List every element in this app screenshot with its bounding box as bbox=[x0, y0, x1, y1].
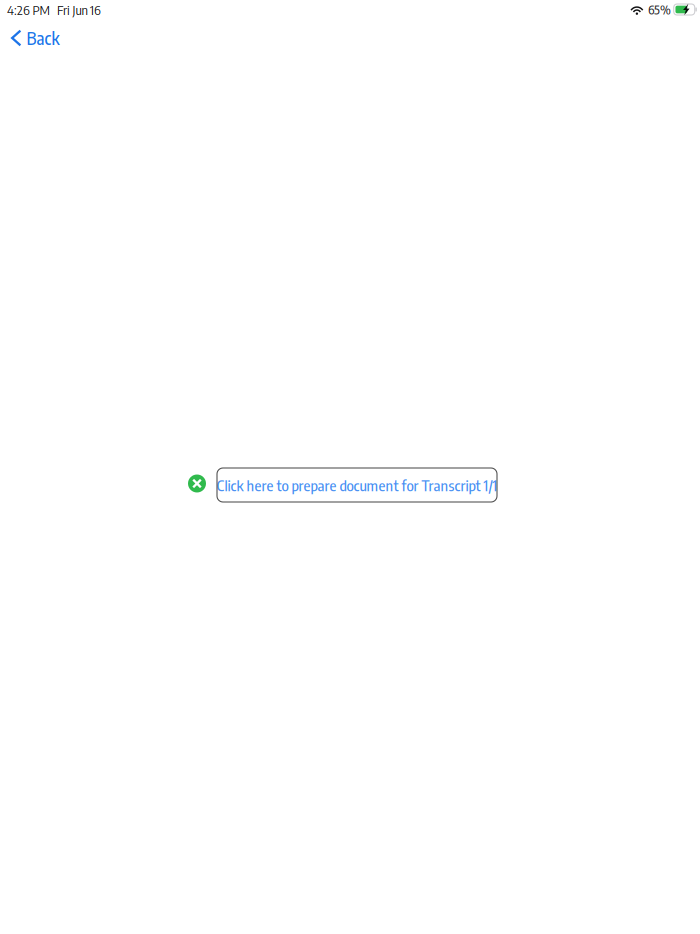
staticText: Fri bbox=[57, 1, 70, 18]
staticText: 4:26 bbox=[7, 1, 30, 18]
staticText: Back bbox=[26, 27, 59, 49]
staticText: 16 bbox=[90, 1, 101, 18]
button[interactable]: Click here to prepare document for Trans… bbox=[217, 468, 497, 502]
button[interactable]: Back bbox=[0, 20, 71, 54]
staticText: 65% bbox=[648, 2, 671, 17]
staticText: PM bbox=[32, 1, 49, 18]
button[interactable]: Dismiss bbox=[188, 476, 206, 494]
staticText: Click here to prepare document for Trans… bbox=[216, 475, 497, 494]
staticText: Jun bbox=[72, 1, 87, 18]
